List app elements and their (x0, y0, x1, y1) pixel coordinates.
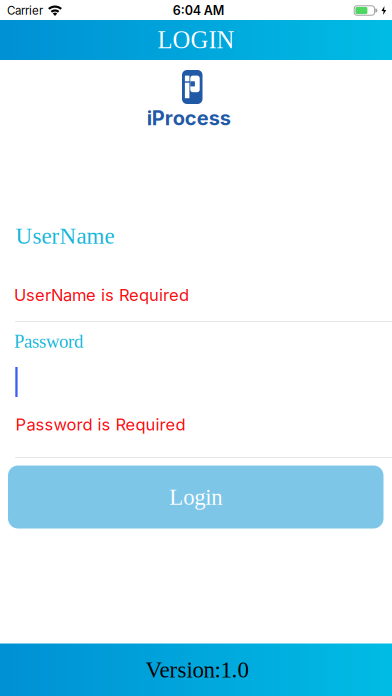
staticText: UserName is Required (14, 285, 189, 305)
staticText: Password is Required (15, 414, 185, 434)
staticText: 6:04 AM (173, 3, 225, 18)
staticText: Password (14, 331, 83, 352)
staticText: UserName (15, 223, 114, 249)
staticText: iProcess (147, 106, 231, 130)
button[interactable]: Login (8, 465, 383, 528)
button[interactable]: UserName (0, 214, 392, 258)
staticText: Carrier (7, 4, 43, 17)
button[interactable]: Password (0, 330, 392, 400)
staticText: Version:1.0 (145, 657, 248, 682)
staticText: Login (169, 484, 222, 509)
staticText: LOGIN (157, 26, 234, 54)
